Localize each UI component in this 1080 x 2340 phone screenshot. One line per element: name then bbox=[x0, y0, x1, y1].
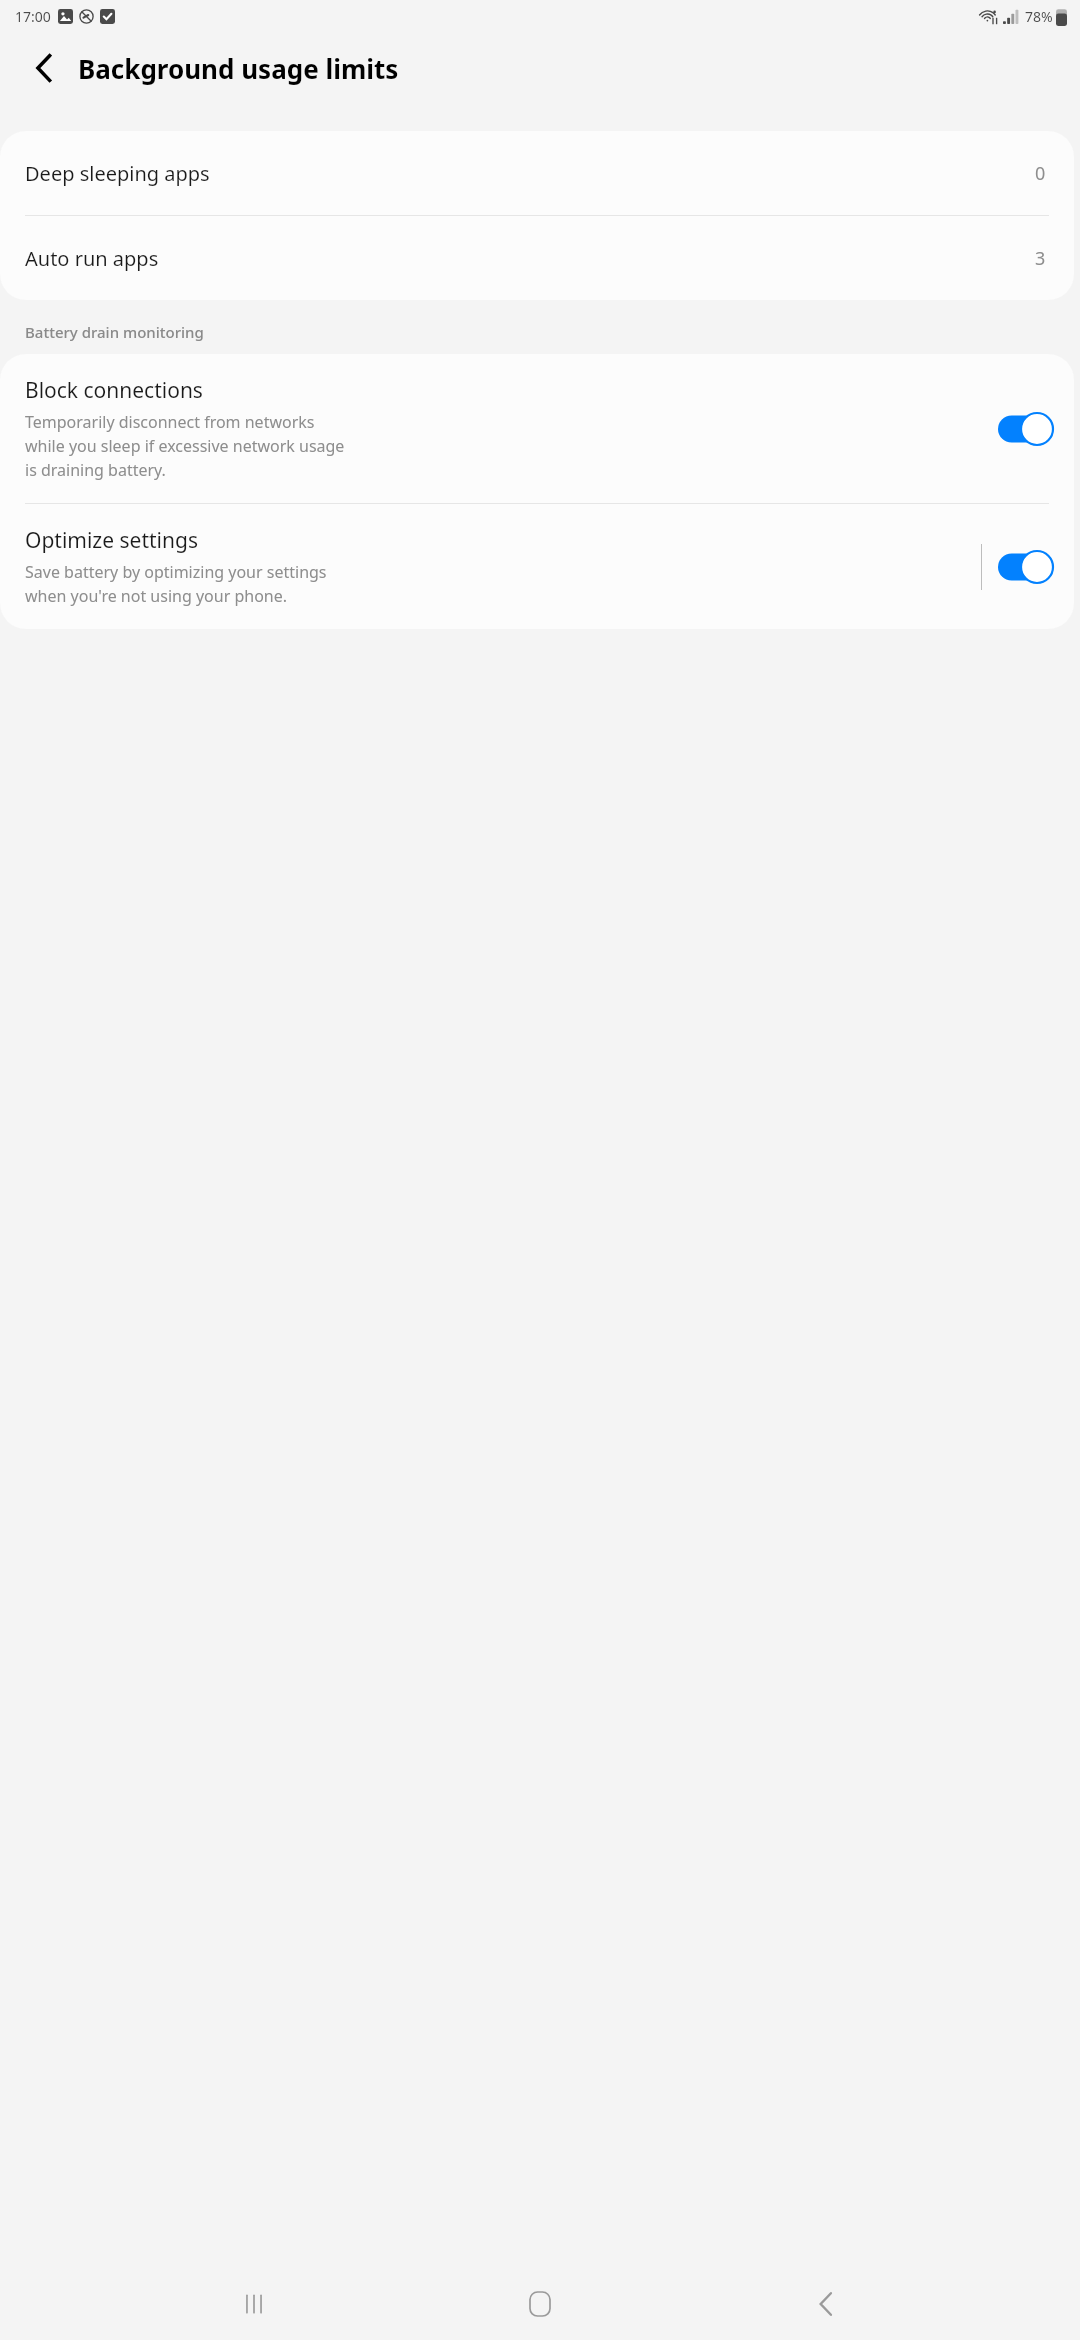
staticText: 78% bbox=[1025, 7, 1053, 26]
staticText: Auto run apps bbox=[25, 245, 1035, 272]
button[interactable]: Optimize settings bbox=[0, 504, 1074, 629]
staticText: Battery drain monitoring bbox=[25, 322, 204, 342]
staticText: Temporarily disconnect from networks whi… bbox=[25, 411, 345, 481]
button[interactable]: Home bbox=[508, 2272, 572, 2336]
staticText: Save battery by optimizing your settings… bbox=[25, 561, 327, 607]
staticText: Deep sleeping apps bbox=[25, 160, 1035, 187]
staticText: 0 bbox=[1035, 161, 1046, 186]
button[interactable]: Deep sleeping apps bbox=[0, 131, 1074, 215]
staticText: 17:00 bbox=[15, 7, 51, 26]
staticText: Optimize settings bbox=[25, 526, 198, 555]
staticText: 3 bbox=[1035, 246, 1046, 271]
button[interactable]: Back bbox=[794, 2272, 858, 2336]
button[interactable]: Auto run apps bbox=[0, 216, 1074, 300]
button[interactable]: Toggle bbox=[998, 550, 1054, 584]
button[interactable]: Recent apps bbox=[222, 2272, 286, 2336]
button[interactable]: Back bbox=[22, 46, 66, 90]
staticText: Block connections bbox=[25, 376, 203, 405]
button[interactable]: Block connections bbox=[0, 354, 1074, 503]
button[interactable]: Toggle bbox=[998, 412, 1054, 446]
staticText: Background usage limits bbox=[78, 51, 399, 86]
